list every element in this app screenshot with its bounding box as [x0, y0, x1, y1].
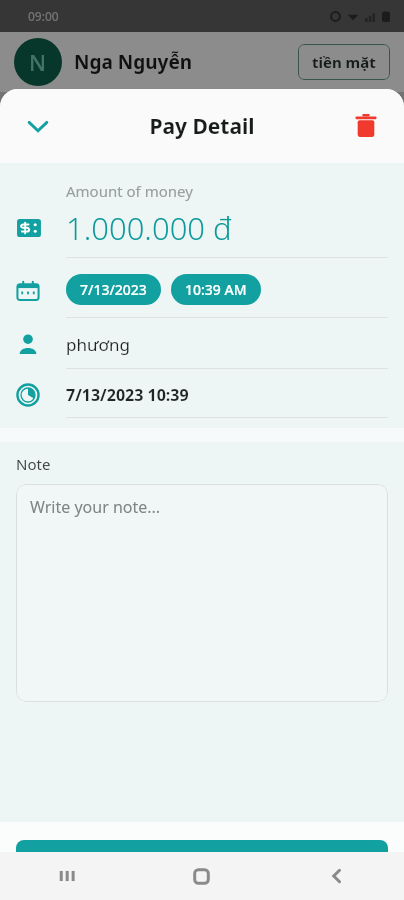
- staticText: Write your note...: [30, 496, 161, 518]
- staticText: Pay Detail: [149, 112, 255, 141]
- staticText: N: [29, 47, 47, 77]
- staticText: phương: [66, 333, 130, 356]
- button[interactable]: 1.000.000 đ: [16, 207, 388, 249]
- button[interactable]: 7/13/2023 10:39: [16, 383, 388, 407]
- button[interactable]: 7/13/2023: [66, 274, 161, 305]
- staticText: 10:39 AM: [185, 280, 247, 299]
- staticText: 1.000.000 đ: [66, 207, 232, 249]
- button[interactable]: Back: [269, 852, 404, 900]
- staticText: Nga Nguyễn: [74, 49, 193, 75]
- button[interactable]: Recent apps: [0, 852, 134, 900]
- button[interactable]: Home: [134, 852, 269, 900]
- staticText: 7/13/2023: [80, 280, 147, 299]
- staticText: Update: [173, 852, 232, 874]
- staticText: tiền mặt: [312, 52, 376, 72]
- staticText: Amount of money: [66, 181, 193, 201]
- staticText: Note: [16, 454, 51, 474]
- button[interactable]: Collapse: [16, 104, 60, 148]
- button[interactable]: Delete: [344, 104, 388, 148]
- button[interactable]: Write your note...: [16, 484, 388, 702]
- staticText: 7/13/2023 10:39: [66, 384, 189, 406]
- button[interactable]: Update: [16, 840, 388, 886]
- staticText: 09:00: [28, 8, 59, 24]
- button[interactable]: phương: [16, 332, 388, 356]
- button[interactable]: 10:39 AM: [171, 274, 261, 305]
